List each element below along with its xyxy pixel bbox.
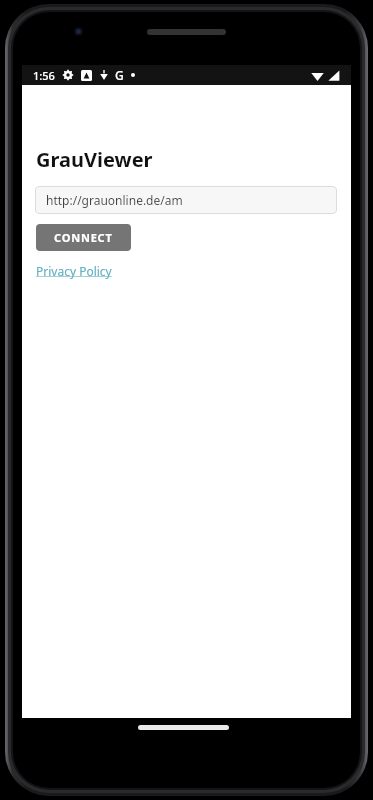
button[interactable]: http://grauonline.de/am (35, 186, 337, 214)
button[interactable]: Privacy Policy (36, 263, 112, 279)
staticText: G (115, 67, 124, 83)
staticText: http://grauonline.de/am (46, 192, 183, 208)
staticText: Privacy Policy (36, 263, 112, 279)
staticText: CONNECT (54, 230, 113, 245)
staticText: GrauViewer (36, 146, 153, 173)
button[interactable]: CONNECT (36, 224, 131, 251)
staticText: 1:56 (33, 68, 55, 83)
